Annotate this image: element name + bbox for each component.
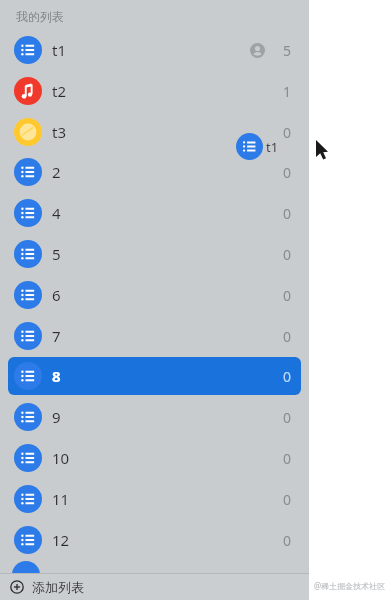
staticText: 0 (277, 245, 291, 264)
button[interactable]: 10 (8, 439, 301, 477)
staticText: t1 (266, 138, 279, 156)
staticText: 我的列表 (16, 9, 64, 24)
staticText: 6 (52, 285, 61, 305)
staticText: 11 (52, 489, 70, 509)
staticText: t3 (52, 122, 66, 142)
staticText: 7 (52, 326, 61, 346)
button[interactable]: t3 (8, 113, 301, 151)
staticText: 2 (52, 162, 61, 182)
staticText: t1 (52, 40, 66, 60)
staticText: 0 (277, 531, 291, 550)
staticText: 0 (277, 163, 291, 182)
button[interactable]: 11 (8, 480, 301, 518)
button[interactable]: 9 (8, 398, 301, 436)
staticText: 添加列表 (32, 579, 84, 595)
button[interactable]: t1 (8, 31, 301, 69)
button[interactable]: 添加列表 (0, 573, 309, 600)
button[interactable]: 8 (8, 357, 301, 395)
staticText: 0 (277, 327, 291, 346)
button[interactable]: t2 (8, 72, 301, 110)
button[interactable]: 7 (8, 317, 301, 355)
button[interactable]: 2 (8, 153, 301, 191)
staticText: 9 (52, 407, 61, 427)
staticText: 0 (277, 408, 291, 427)
staticText: 10 (52, 448, 70, 468)
staticText: 0 (277, 490, 291, 509)
staticText: 0 (277, 286, 291, 305)
button[interactable]: 4 (8, 194, 301, 232)
staticText: 5 (52, 244, 61, 264)
staticText: 0 (277, 367, 291, 386)
staticText: @稀土掘金技术社区 (314, 580, 386, 591)
staticText: 1 (277, 82, 291, 101)
staticText: 4 (52, 203, 61, 223)
staticText: 0 (277, 449, 291, 468)
staticText: 8 (52, 366, 61, 386)
staticText: t2 (52, 81, 66, 101)
button[interactable]: 12 (8, 521, 301, 559)
staticText: 5 (277, 41, 291, 60)
staticText: 0 (277, 123, 291, 142)
button[interactable]: 6 (8, 276, 301, 314)
button[interactable]: 5 (8, 235, 301, 273)
staticText: 12 (52, 530, 70, 550)
staticText: 0 (277, 204, 291, 223)
